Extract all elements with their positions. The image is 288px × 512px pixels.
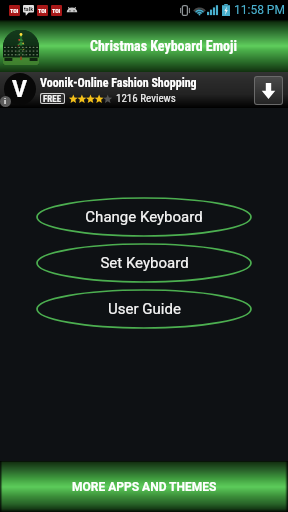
button[interactable]: MORE APPS AND THEMES [0, 461, 288, 512]
staticText: FREE [43, 94, 62, 103]
button[interactable]: App icon [3, 30, 39, 65]
staticText: 11:58 PM [234, 3, 285, 17]
staticText: Voonik-Online Fashion Shopping [40, 76, 197, 90]
staticText: Christmas Keyboard Emoji [90, 38, 237, 54]
staticText: Change Keyboard [85, 208, 203, 226]
button[interactable]: User Guide [37, 290, 251, 328]
staticText: TOI [38, 7, 47, 14]
staticText: i [4, 97, 7, 106]
staticText: talk [24, 5, 34, 12]
button[interactable]: Download [255, 77, 282, 104]
staticText: TOI [52, 7, 61, 14]
staticText: MORE APPS AND THEMES [72, 480, 217, 494]
button[interactable]: Change Keyboard [37, 198, 251, 236]
button[interactable]: Set Keyboard [37, 244, 251, 282]
staticText: User Guide [108, 300, 181, 318]
staticText: V [12, 76, 28, 103]
staticText: Set Keyboard [100, 254, 189, 272]
staticText: 1216 Reviews [116, 92, 176, 105]
button[interactable]: V [0, 72, 288, 108]
staticText: TOI [10, 7, 19, 14]
